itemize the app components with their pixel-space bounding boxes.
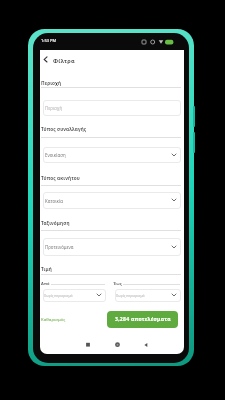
button[interactable] — [41, 55, 50, 64]
staticText: Από — [41, 281, 50, 286]
staticText: Κατοικία — [45, 198, 64, 204]
staticText: 3,284 αποτελέσματα — [115, 316, 171, 323]
button[interactable] — [142, 341, 150, 349]
button[interactable]: 3,284 αποτελέσματα — [107, 311, 178, 328]
staticText: Χωρίς περιορισμό — [44, 293, 73, 298]
staticText: Τιμή — [41, 266, 52, 272]
staticText: Περιοχή — [45, 105, 63, 111]
button[interactable]: Περιοχή — [43, 100, 181, 116]
button[interactable]: Κατοικία — [43, 192, 181, 209]
button[interactable]: Χωρίς περιορισμό — [43, 289, 106, 302]
staticText: Ενοικίαση — [45, 152, 66, 158]
staticText: Έως — [113, 281, 123, 286]
button[interactable] — [113, 341, 122, 349]
staticText: Τύπος ακινήτου — [41, 175, 80, 181]
staticText: Καθαρισμός — [41, 317, 66, 323]
staticText: Τύπος συναλλαγής — [41, 126, 87, 132]
staticText: Προτεινόμενα — [45, 244, 74, 250]
button[interactable]: Καθαρισμός — [41, 317, 71, 327]
button[interactable]: Προτεινόμενα — [43, 238, 181, 256]
staticText: 1:53 PM — [41, 38, 57, 43]
staticText: Ταξινόμηση — [41, 220, 70, 226]
staticText: Χωρίς περιορισμό — [116, 293, 145, 298]
button[interactable] — [84, 341, 92, 349]
button[interactable]: Ενοικίαση — [43, 147, 181, 163]
button[interactable]: Χωρίς περιορισμό — [115, 289, 181, 302]
staticText: Φίλτρα — [53, 57, 75, 65]
staticText: Περιοχή — [41, 80, 62, 86]
